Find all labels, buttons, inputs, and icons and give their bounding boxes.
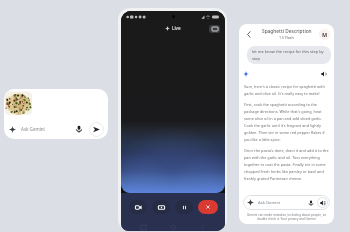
button[interactable]: Ask Gemini	[247, 195, 328, 210]
staticText: M	[322, 31, 328, 38]
button[interactable]: Live	[165, 25, 181, 31]
button[interactable]: Ask Gemini	[4, 89, 108, 139]
button[interactable]: Minimize	[209, 25, 220, 33]
button[interactable]: Account	[319, 29, 330, 40]
button[interactable]: Back	[243, 29, 254, 40]
staticText: let me know the recipe for this step by …	[252, 49, 326, 61]
button[interactable]: Read aloud	[319, 69, 329, 79]
staticText: First, cook the spaghetti according to t…	[244, 102, 331, 143]
staticText: Gemini can make mistakes, including abou…	[239, 213, 334, 221]
staticText: Ask Gemini	[21, 126, 45, 132]
staticText: Once the pasta's done, drain it and add …	[244, 148, 331, 182]
button[interactable]: End call	[198, 200, 218, 214]
button[interactable]: Pause	[175, 200, 193, 214]
staticText: Sure, here's a classic recipe for spaghe…	[244, 84, 331, 97]
staticText: Spaghetti Description	[262, 28, 312, 35]
button[interactable]: let me know the recipe for this step by …	[252, 49, 326, 61]
button[interactable]: Gemini Live	[317, 197, 328, 208]
staticText: Ask Gemini	[258, 200, 281, 206]
button[interactable]: Voice input	[306, 198, 316, 208]
button[interactable]: Voice input	[73, 123, 85, 135]
button[interactable]: Camera	[152, 200, 170, 214]
button[interactable]: Send	[89, 122, 104, 137]
staticText: Live	[172, 25, 181, 31]
staticText: 1.5 Flash	[279, 35, 294, 40]
button[interactable]: Share screen	[129, 200, 147, 214]
